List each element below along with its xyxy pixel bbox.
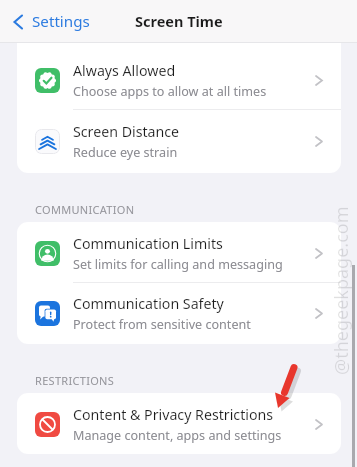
staticText: Protect from sensitive content — [73, 316, 251, 333]
staticText: RESTRICTIONS — [35, 373, 115, 388]
button[interactable]: Communication Safety — [17, 282, 341, 343]
staticText: Communication Safety — [73, 294, 224, 313]
button[interactable]: Back to Settings — [9, 5, 94, 38]
staticText: Screen Distance — [73, 122, 180, 141]
staticText: Manage content, apps and settings — [73, 427, 282, 444]
staticText: COMMUNICATION — [35, 202, 135, 217]
button[interactable]: Screen Distance — [17, 110, 341, 171]
button[interactable]: Communication Limits — [17, 222, 341, 283]
button[interactable]: Content & Privacy Restrictions — [17, 393, 341, 454]
staticText: Settings — [32, 11, 90, 32]
staticText: Content & Privacy Restrictions — [73, 405, 274, 424]
button[interactable]: Always Allowed — [17, 49, 341, 110]
staticText: Always Allowed — [73, 61, 176, 80]
staticText: Reduce eye strain — [73, 144, 178, 161]
staticText: Screen Time — [135, 11, 223, 31]
staticText: Communication Limits — [73, 234, 223, 253]
staticText: Set limits for calling and messaging — [73, 256, 283, 273]
staticText: Choose apps to allow at all times — [73, 83, 267, 100]
staticText: @thegeekpage.com — [329, 206, 353, 375]
